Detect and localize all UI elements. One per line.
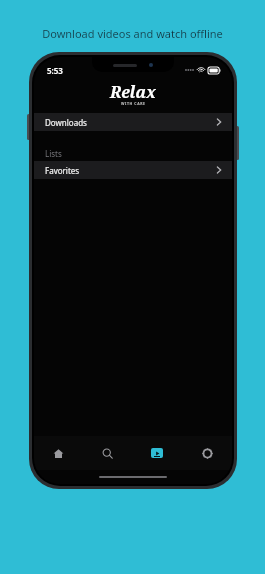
button[interactable]: Settings [182,436,232,470]
button[interactable]: Favorites [34,161,232,179]
button[interactable]: Downloads [34,113,232,131]
button[interactable]: Home [34,436,83,470]
staticText: 5:53 [47,65,63,76]
staticText: Relax [110,81,156,103]
staticText: Download videos and watch offline [42,26,223,41]
button[interactable]: Search [83,436,132,470]
staticText: WITH CARE [121,101,146,106]
staticText: Lists [45,148,62,159]
staticText: Downloads [45,117,87,128]
staticText: Favorites [45,165,80,176]
button[interactable]: Videos [132,436,182,470]
